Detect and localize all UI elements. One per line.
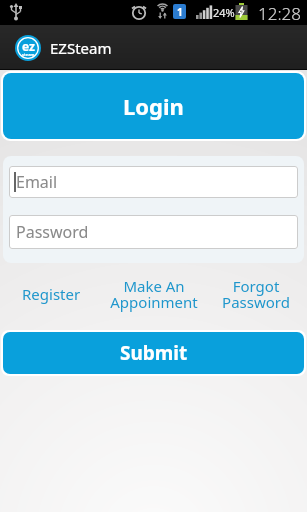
staticText: Register [22, 284, 81, 304]
staticText: Submit [120, 340, 188, 366]
button[interactable]: Make An Appoinment [103, 276, 205, 312]
button[interactable]: Submit [3, 332, 304, 374]
staticText: Login [123, 91, 184, 121]
staticText: steam [22, 52, 35, 57]
button[interactable]: Password [9, 215, 298, 249]
staticText: Email [16, 171, 58, 193]
staticText: ez [22, 38, 35, 54]
staticText: Make An Appoinment [110, 276, 198, 312]
button[interactable]: Login [3, 73, 304, 139]
button[interactable]: Email [9, 166, 298, 198]
staticText: Forgot Password [222, 276, 290, 312]
staticText: 24% [213, 5, 235, 20]
button[interactable]: Register [0, 284, 103, 304]
staticText: Password [16, 221, 89, 243]
staticText: EZSteam [50, 38, 112, 58]
staticText: 1 [177, 5, 183, 19]
staticText: 12:28 [258, 2, 301, 25]
button[interactable]: Forgot Password [205, 276, 307, 312]
